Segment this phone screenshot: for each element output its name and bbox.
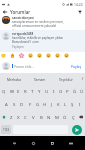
button[interactable]: Reaction xyxy=(19,53,24,58)
button[interactable]: Ö xyxy=(61,110,69,123)
staticText: P xyxy=(66,88,69,94)
button[interactable]: R xyxy=(22,84,29,97)
button[interactable]: Send xyxy=(72,125,82,135)
button[interactable]: Reaction xyxy=(46,53,51,58)
button[interactable]: Shift xyxy=(0,110,8,123)
staticText: J xyxy=(51,101,53,107)
button[interactable]: F xyxy=(26,97,34,110)
staticText: K xyxy=(57,101,60,107)
staticText: Ü xyxy=(80,88,84,94)
button[interactable]: A xyxy=(2,97,10,110)
button[interactable]: N xyxy=(45,110,53,123)
button[interactable]: Home xyxy=(28,138,38,148)
staticText: 14:22 xyxy=(74,2,83,7)
button[interactable]: L xyxy=(62,97,69,110)
button[interactable]: T xyxy=(29,84,36,97)
button[interactable]: Ğ xyxy=(71,84,78,97)
button[interactable]: sanatcidunyasi xyxy=(0,15,85,30)
button[interactable]: Tamam xyxy=(27,73,53,84)
staticText: F xyxy=(29,101,32,107)
button[interactable]: P xyxy=(64,84,71,97)
staticText: E xyxy=(17,88,20,94)
staticText: A xyxy=(5,101,8,107)
button[interactable]: Reaction xyxy=(10,53,15,58)
staticText: I xyxy=(79,101,81,107)
staticText: T xyxy=(31,88,34,94)
staticText: R xyxy=(24,88,27,94)
button[interactable]: evrigozde2458 xyxy=(0,30,85,52)
button[interactable]: Reaction xyxy=(55,53,60,58)
button[interactable]: Yorum ekle... xyxy=(12,64,70,68)
button[interactable]: Back xyxy=(9,138,19,148)
staticText: H xyxy=(43,101,47,107)
button[interactable]: U xyxy=(43,84,50,97)
button[interactable]: Recents xyxy=(47,138,57,148)
button[interactable]: B xyxy=(37,110,45,123)
staticText: Z xyxy=(10,114,13,120)
staticText: Ö xyxy=(63,114,67,120)
button[interactable]: Z xyxy=(8,110,15,123)
button[interactable]: X xyxy=(15,110,22,123)
staticText: Gör xyxy=(12,29,17,30)
button[interactable]: Delete xyxy=(77,110,85,123)
button[interactable]: Ş xyxy=(69,97,76,110)
button[interactable]: Q xyxy=(0,84,8,97)
button[interactable]: Reaction xyxy=(28,53,33,58)
button[interactable]: Hide keyboard xyxy=(66,138,76,148)
button[interactable]: Y xyxy=(36,84,43,97)
staticText: B xyxy=(40,114,43,120)
button[interactable]: Filter xyxy=(76,8,83,15)
staticText: Ş xyxy=(71,101,74,107)
button[interactable]: Reaction xyxy=(64,53,69,58)
staticText: Teşekkür xyxy=(59,77,73,81)
staticText: Ğ xyxy=(73,88,77,94)
staticText: Ç xyxy=(72,114,75,120)
staticText: X xyxy=(17,114,20,120)
staticText: sanatcidunyasi xyxy=(12,16,34,20)
staticText: Q xyxy=(2,88,6,94)
button[interactable]: Back xyxy=(1,8,8,15)
button[interactable]: H xyxy=(41,97,48,110)
staticText: N xyxy=(47,114,51,120)
button[interactable]: K xyxy=(55,97,62,110)
staticText: Yorum ekle... xyxy=(14,64,35,68)
button[interactable]: C xyxy=(22,110,29,123)
button[interactable]: More xyxy=(79,73,85,84)
button[interactable]: Teşekkür xyxy=(53,73,79,84)
staticText: Y xyxy=(38,88,41,94)
staticText: M xyxy=(55,114,59,120)
button[interactable]: S xyxy=(10,97,18,110)
button[interactable]: I xyxy=(50,84,57,97)
button[interactable]: Reaction xyxy=(1,53,6,58)
staticText: L xyxy=(64,101,67,107)
staticText: O xyxy=(59,88,63,94)
staticText: W xyxy=(10,88,14,94)
staticText: Paylaşım xyxy=(12,45,24,49)
staticText: Tamam xyxy=(34,77,46,81)
button[interactable]: M xyxy=(53,110,61,123)
button[interactable]: E xyxy=(15,84,22,97)
button[interactable]: D xyxy=(18,97,26,110)
button[interactable]: Ü xyxy=(78,84,85,97)
button[interactable]: V xyxy=(29,110,37,123)
button[interactable]: Merhaba xyxy=(0,73,27,84)
button[interactable]: Paylaş xyxy=(70,64,83,68)
button[interactable]: O xyxy=(57,84,64,97)
staticText: Merhaba xyxy=(7,77,21,81)
staticText: hazırlıklar, etkinlik ve paylaşım yıldız… xyxy=(12,36,64,44)
button[interactable]: G xyxy=(34,97,41,110)
staticText: V xyxy=(32,114,35,120)
button[interactable]: W xyxy=(8,84,15,97)
staticText: evrigozde2458 xyxy=(12,32,34,36)
button[interactable]: ?123 xyxy=(1,125,11,134)
staticText: ?123 xyxy=(3,128,10,132)
button[interactable]: Reaction xyxy=(37,53,42,58)
button[interactable]: I xyxy=(76,97,83,110)
button[interactable]: Ç xyxy=(69,110,77,123)
staticText: Paylaş xyxy=(71,64,82,68)
staticText: I xyxy=(53,88,55,94)
staticText: S xyxy=(13,101,16,107)
staticText: sanatçılarımızın en sevilen yeni eseri, … xyxy=(12,20,64,28)
button[interactable]: J xyxy=(48,97,55,110)
